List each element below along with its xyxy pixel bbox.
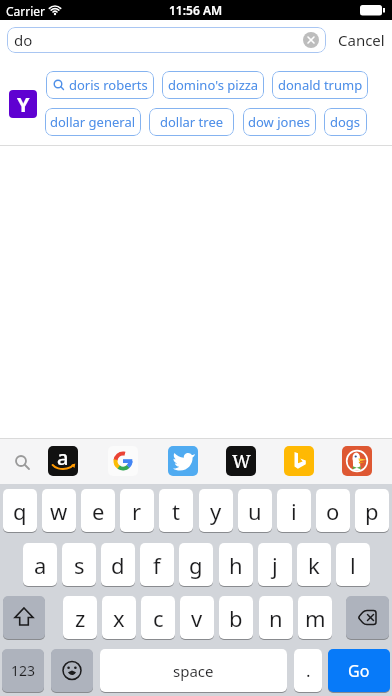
staticText: Carrier — [6, 3, 46, 19]
staticText: j — [272, 550, 278, 580]
staticText: doris roberts — [69, 76, 148, 94]
button[interactable] — [346, 596, 389, 639]
button[interactable]: l — [336, 543, 370, 586]
staticText: W — [232, 449, 251, 474]
staticText: t — [172, 496, 180, 526]
button[interactable]: a — [23, 543, 57, 586]
staticText: i — [291, 496, 297, 526]
staticText: a — [34, 550, 47, 580]
button[interactable]: i — [277, 489, 311, 532]
button[interactable]: dollar tree — [149, 108, 234, 136]
button[interactable]: z — [63, 596, 97, 639]
button[interactable]: space — [100, 649, 287, 692]
staticText: 123 — [11, 661, 36, 680]
button[interactable]: dollar general — [45, 108, 141, 136]
button[interactable]: 123 — [2, 649, 44, 692]
button[interactable]: do — [7, 27, 326, 53]
button[interactable]: k — [297, 543, 331, 586]
staticText: dow jones — [248, 113, 311, 131]
staticText: donald trump — [278, 76, 363, 94]
button[interactable] — [3, 596, 45, 639]
button[interactable]: y — [199, 489, 233, 532]
button[interactable]: n — [259, 596, 293, 639]
staticText: space — [173, 661, 214, 681]
staticText: x — [113, 603, 125, 633]
staticText: n — [269, 603, 283, 633]
button[interactable]: x — [102, 596, 136, 639]
staticText: w — [50, 496, 68, 526]
staticText: dollar tree — [160, 113, 224, 131]
staticText: do — [14, 30, 33, 50]
button[interactable]: W — [226, 446, 256, 476]
staticText: Go — [348, 660, 370, 682]
button[interactable] — [168, 446, 198, 476]
staticText: g — [189, 550, 203, 580]
button[interactable]: r — [120, 489, 154, 532]
button[interactable]: u — [238, 489, 272, 532]
button[interactable]: h — [219, 543, 253, 586]
button[interactable]: t — [159, 489, 193, 532]
button[interactable]: b — [219, 596, 253, 639]
staticText: b — [229, 603, 243, 633]
button[interactable]: w — [42, 489, 76, 532]
button[interactable]: s — [62, 543, 96, 586]
staticText: y — [210, 496, 222, 526]
button[interactable]: Y — [9, 90, 37, 118]
button[interactable]: a — [48, 446, 78, 476]
button[interactable]: p — [355, 489, 389, 532]
button[interactable]: donald trump — [272, 71, 368, 99]
button[interactable]: doris roberts — [46, 71, 154, 99]
staticText: q — [13, 496, 27, 526]
staticText: h — [229, 550, 243, 580]
button[interactable]: o — [316, 489, 350, 532]
button[interactable]: dow jones — [243, 108, 316, 136]
button[interactable]: . — [294, 649, 322, 692]
button[interactable]: dogs — [324, 108, 367, 136]
staticText: e — [92, 496, 105, 526]
staticText: a — [57, 446, 69, 471]
button[interactable]: e — [81, 489, 115, 532]
staticText: Cancel — [338, 30, 385, 50]
staticText: c — [153, 603, 164, 633]
staticText: domino's pizza — [168, 76, 259, 94]
staticText: s — [74, 550, 85, 580]
button[interactable]: v — [180, 596, 214, 639]
staticText: o — [326, 496, 340, 526]
staticText: z — [75, 603, 86, 633]
staticText: 11:56 AM — [169, 2, 223, 18]
button[interactable] — [51, 649, 93, 692]
staticText: p — [365, 496, 379, 526]
button[interactable] — [284, 446, 314, 476]
staticText: l — [350, 550, 356, 580]
staticText: r — [132, 496, 142, 526]
button[interactable]: d — [101, 543, 135, 586]
button[interactable]: c — [141, 596, 175, 639]
button[interactable]: m — [298, 596, 332, 639]
staticText: f — [153, 550, 161, 580]
staticText: d — [111, 550, 125, 580]
staticText: Y — [17, 91, 30, 118]
staticText: dogs — [330, 113, 361, 131]
staticText: v — [191, 603, 203, 633]
button[interactable]: domino's pizza — [162, 71, 264, 99]
button[interactable]: f — [140, 543, 174, 586]
button[interactable]: j — [258, 543, 292, 586]
button[interactable]: q — [3, 489, 37, 532]
staticText: dollar general — [50, 113, 136, 131]
staticText: . — [306, 659, 311, 682]
button[interactable] — [342, 446, 372, 476]
staticText: u — [248, 496, 262, 526]
button[interactable]: g — [179, 543, 213, 586]
button[interactable]: Go — [328, 649, 390, 692]
button[interactable]: Cancel — [331, 27, 391, 53]
button[interactable] — [108, 446, 138, 476]
staticText: m — [305, 603, 326, 633]
staticText: k — [308, 550, 320, 580]
